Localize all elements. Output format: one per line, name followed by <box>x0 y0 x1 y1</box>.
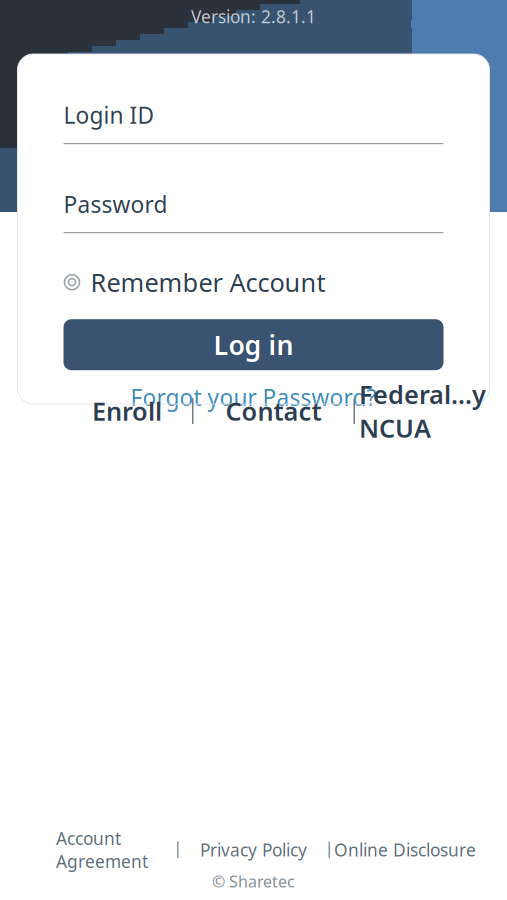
staticText: Log in <box>213 327 293 362</box>
button[interactable]: Forgot your Password? <box>35 384 471 410</box>
staticText: Enroll <box>92 394 162 428</box>
button[interactable]: Account Agreement <box>27 837 177 863</box>
staticText: 8:57 AM <box>244 2 331 32</box>
staticText: Contact <box>225 394 321 428</box>
button[interactable]: Enroll <box>62 394 192 428</box>
button[interactable]: Contact <box>193 394 353 428</box>
button[interactable]: Federal…y NCUA <box>355 394 486 428</box>
button[interactable]: Remember Account <box>35 269 471 295</box>
staticText: © Sharetec <box>212 871 295 892</box>
staticText: Online Disclosure <box>334 838 476 861</box>
button[interactable]: Privacy Policy <box>178 837 328 863</box>
button[interactable]: Log in <box>35 319 471 370</box>
staticText: Version: 2.8.1.1 <box>191 5 316 28</box>
staticText: Privacy Policy <box>200 838 307 861</box>
staticText: Login ID <box>63 100 154 130</box>
button[interactable]: Online Disclosure <box>330 837 480 863</box>
staticText: Password <box>63 189 167 219</box>
staticText: Federal…y NCUA <box>359 377 486 445</box>
staticText: Remember Account <box>90 265 325 299</box>
staticText: Account Agreement <box>56 827 148 873</box>
staticText: Forgot your Password? <box>130 382 376 412</box>
staticText: P&G <box>219 31 287 75</box>
